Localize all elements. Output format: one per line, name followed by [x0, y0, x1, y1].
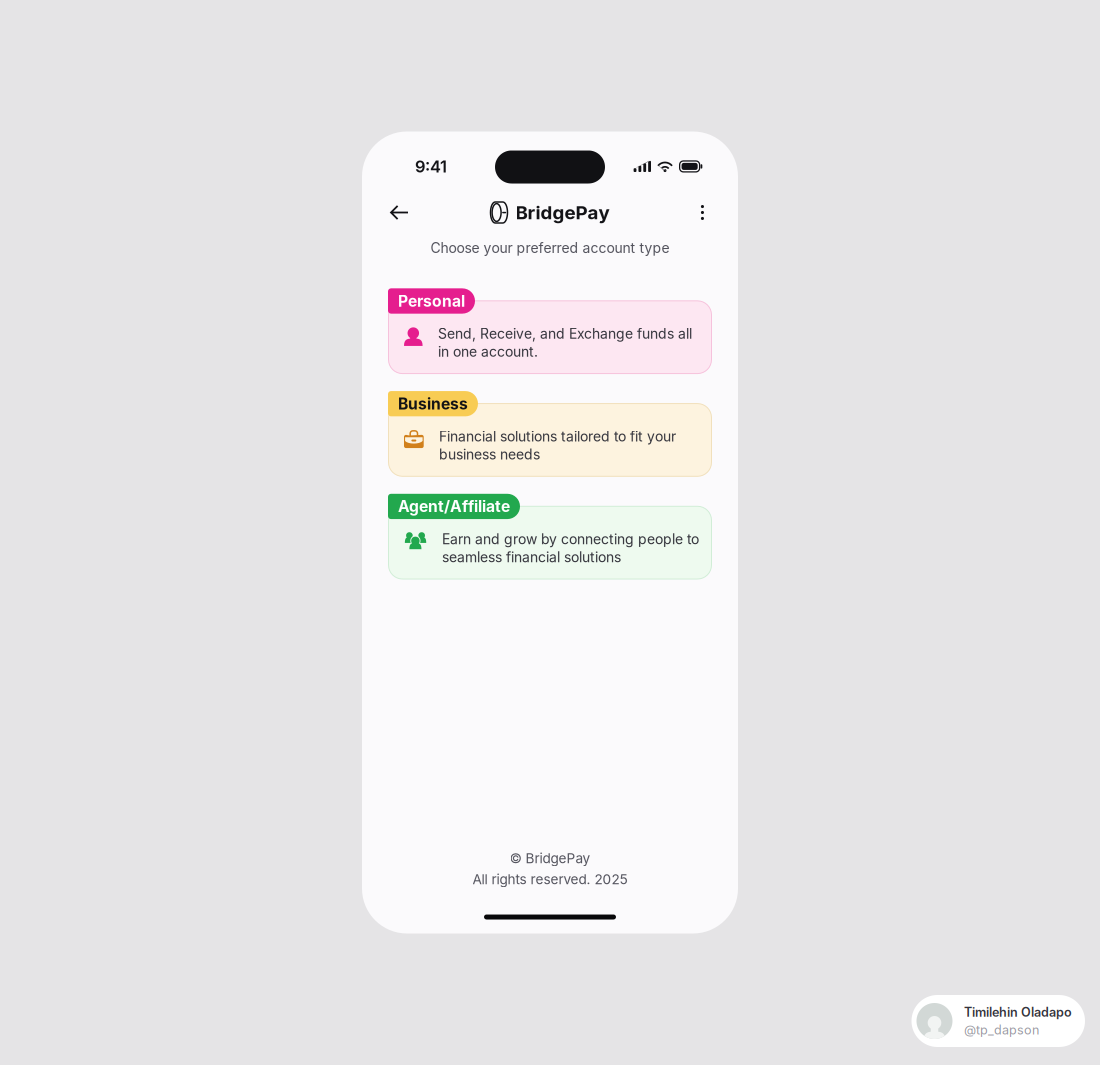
button[interactable]: Back: [380, 194, 419, 231]
staticText: Earn and grow by connecting people to: [442, 531, 699, 548]
button[interactable]: Financial solutions tailored to fit your: [388, 391, 712, 477]
staticText: in one account.: [438, 343, 538, 360]
staticText: Business: [398, 394, 468, 413]
staticText: @tp_dapson: [964, 1022, 1039, 1037]
staticText: Send, Receive, and Exchange funds all: [438, 325, 692, 342]
button[interactable]: More options: [688, 192, 717, 233]
staticText: Choose your preferred account type: [430, 239, 669, 256]
staticText: seamless financial solutions: [442, 549, 621, 566]
staticText: © BridgePay: [509, 850, 590, 867]
button[interactable]: Send, Receive, and Exchange funds all: [388, 288, 712, 374]
staticText: All rights reserved. 2025: [472, 871, 627, 887]
staticText: Timilehin Oladapo: [964, 1004, 1072, 1020]
staticText: business needs: [439, 446, 540, 463]
staticText: Personal: [398, 292, 465, 310]
staticText: BridgePay: [515, 201, 609, 224]
staticText: Financial solutions tailored to fit your: [439, 428, 676, 445]
staticText: 9:41: [415, 156, 447, 176]
staticText: Agent/Affiliate: [398, 497, 510, 516]
button[interactable]: Earn and grow by connecting people to: [388, 494, 712, 579]
